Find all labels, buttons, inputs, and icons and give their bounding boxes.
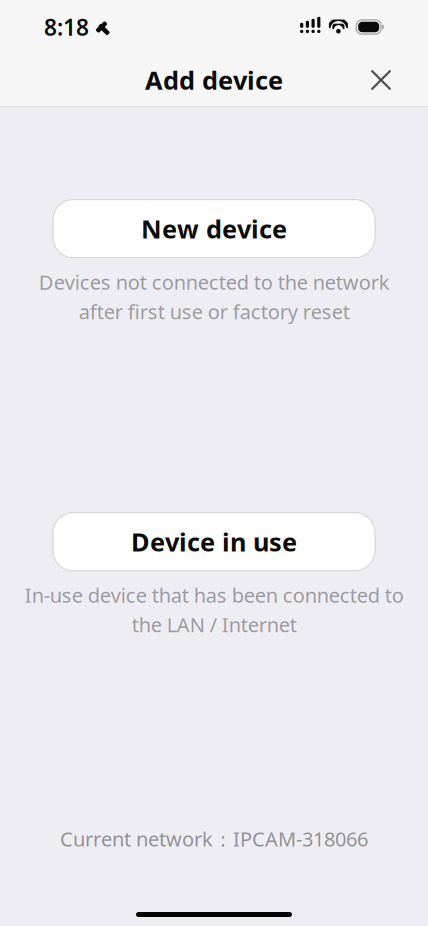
button[interactable]: Device in use <box>0 513 428 571</box>
staticText: Device in use <box>131 525 297 558</box>
staticText: Current network：IPCAM-318066 <box>60 825 368 852</box>
staticText: Add device <box>145 63 283 97</box>
staticText: 8:18 <box>44 12 89 42</box>
button[interactable]: New device <box>0 200 428 258</box>
button[interactable]: Close <box>354 53 408 107</box>
staticText: Devices not connected to the network aft… <box>38 269 389 325</box>
staticText: In-use device that has been connected to… <box>24 582 403 638</box>
staticText: New device <box>141 212 287 245</box>
